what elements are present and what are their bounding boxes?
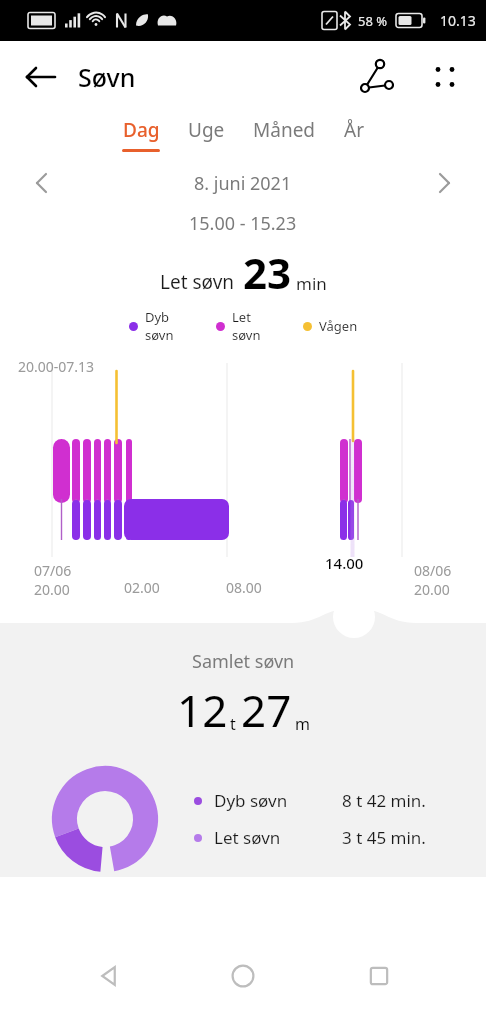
staticText: Dyb xyxy=(145,308,170,326)
staticText: 8. juni 2021 xyxy=(194,171,292,196)
button[interactable]: Previous day xyxy=(22,163,62,203)
staticText: min xyxy=(296,272,327,295)
staticText: søvn xyxy=(232,326,261,344)
staticText: t xyxy=(230,713,236,735)
staticText: 10.13 xyxy=(440,11,476,30)
staticText: 15.00 - 15.23 xyxy=(189,211,297,236)
staticText: 23 xyxy=(243,244,292,301)
staticText: 8 t 42 min. xyxy=(342,789,426,812)
staticText: Let xyxy=(232,308,251,326)
staticText: Samlet søvn xyxy=(192,649,295,674)
staticText: søvn xyxy=(145,326,174,344)
staticText: 27 xyxy=(241,680,292,740)
staticText: m xyxy=(295,713,310,735)
staticText: Let søvn xyxy=(214,826,281,849)
staticText: Dag xyxy=(123,117,160,143)
button[interactable]: Let søvn xyxy=(194,826,426,849)
button[interactable]: Dyb søvn xyxy=(194,789,426,812)
staticText: 08.00 xyxy=(226,578,262,597)
button[interactable]: Back xyxy=(80,948,136,1004)
staticText: Vågen xyxy=(319,317,358,335)
button[interactable]: Back xyxy=(18,54,64,100)
staticText: 58 % xyxy=(358,12,388,30)
staticText: 20.00 xyxy=(414,580,450,599)
staticText: 20.00 xyxy=(34,580,70,599)
button[interactable]: Next day xyxy=(424,163,464,203)
button[interactable]: Recent apps xyxy=(351,948,407,1004)
staticText: 20.00-07.13 xyxy=(18,357,95,376)
button[interactable]: More options xyxy=(422,54,468,100)
staticText: 07/06 xyxy=(34,561,72,580)
staticText: 08/06 xyxy=(414,561,452,580)
button[interactable]: Dag xyxy=(108,113,174,156)
staticText: Måned xyxy=(253,117,316,143)
button[interactable]: Uge xyxy=(174,113,239,153)
staticText: Let søvn xyxy=(160,269,235,295)
staticText: Søvn xyxy=(78,60,136,94)
staticText: År xyxy=(344,117,364,143)
button[interactable]: Home xyxy=(215,948,271,1004)
staticText: 12 xyxy=(177,680,228,740)
button[interactable]: År xyxy=(330,113,378,153)
button[interactable]: Måned xyxy=(239,113,330,153)
staticText: 3 t 45 min. xyxy=(342,826,426,849)
staticText: 14.00 xyxy=(325,553,364,573)
button[interactable]: Share xyxy=(354,54,400,100)
staticText: Dyb søvn xyxy=(214,789,288,812)
staticText: 02.00 xyxy=(124,578,160,597)
staticText: Uge xyxy=(188,117,225,143)
